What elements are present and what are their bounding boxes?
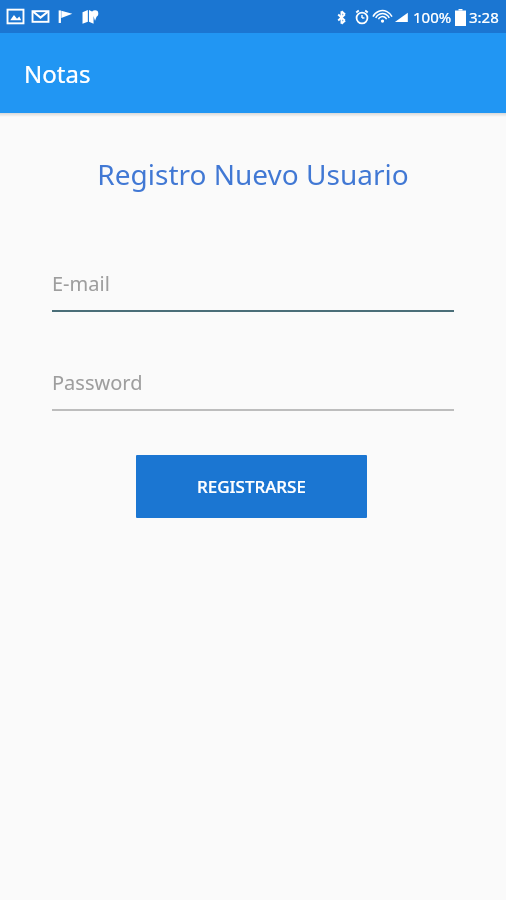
staticText: REGISTRARSE	[197, 475, 306, 498]
staticText: Password	[52, 369, 143, 396]
button[interactable]: E-mail field	[52, 270, 454, 312]
staticText: E-mail	[52, 270, 110, 297]
staticText: 100%	[413, 7, 452, 27]
staticText: Notas	[24, 57, 91, 90]
button[interactable]: Password field	[52, 369, 454, 411]
staticText: Registro Nuevo Usuario	[0, 155, 506, 193]
staticText: 3:28	[469, 7, 499, 27]
button[interactable]: REGISTRARSE	[136, 455, 367, 518]
